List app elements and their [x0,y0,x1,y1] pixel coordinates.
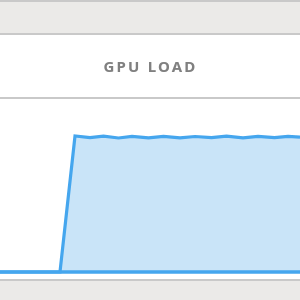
button[interactable] [0,99,300,279]
staticText: GPU LOAD [103,56,198,76]
button[interactable]: GPU LOAD [0,35,300,97]
